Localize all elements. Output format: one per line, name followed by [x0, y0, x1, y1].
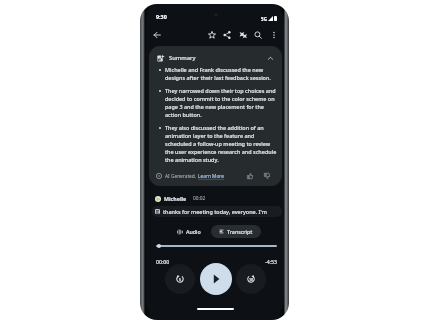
- staticText: 00:02: [193, 195, 206, 202]
- staticText: They narrowed down their top choices and…: [165, 87, 279, 119]
- button[interactable]: Favorite: [204, 27, 219, 42]
- staticText: 5: [179, 277, 182, 282]
- button[interactable]: thanks for meeting today, everyone. I'm: [152, 206, 282, 217]
- staticText: They also discussed the addition of an a…: [165, 124, 279, 164]
- button[interactable]: Thumbs down: [262, 171, 272, 181]
- staticText: -4:53: [265, 258, 277, 265]
- staticText: Michelle: [164, 195, 187, 202]
- staticText: Audio: [186, 228, 201, 235]
- button[interactable]: Audio: [170, 225, 208, 238]
- staticText: AI Generated.: [165, 173, 198, 180]
- staticText: Michelle and Frank discussed the new des…: [165, 66, 279, 82]
- button[interactable]: AI magic: [235, 27, 250, 42]
- button[interactable]: More options: [266, 27, 281, 42]
- button[interactable]: Summary: [149, 50, 282, 66]
- button[interactable]: Thumbs up: [245, 171, 255, 181]
- staticText: Summary: [169, 54, 196, 62]
- staticText: thanks for meeting today, everyone. I'm: [163, 208, 267, 215]
- button[interactable]: Forward 10 seconds: [236, 264, 266, 294]
- button[interactable]: Rewind 5 seconds: [165, 264, 195, 294]
- button[interactable]: Play: [200, 263, 232, 295]
- button[interactable]: Transcript: [211, 225, 261, 238]
- staticText: 10: [249, 277, 254, 282]
- staticText: 5G: [261, 16, 267, 22]
- button[interactable]: Search: [250, 27, 265, 42]
- button[interactable]: Back: [149, 27, 164, 42]
- button[interactable]: Learn More: [198, 173, 224, 180]
- staticText: 00:00: [156, 258, 170, 265]
- button[interactable]: Share: [219, 27, 234, 42]
- staticText: 9:30: [156, 13, 167, 20]
- staticText: Transcript: [227, 228, 253, 235]
